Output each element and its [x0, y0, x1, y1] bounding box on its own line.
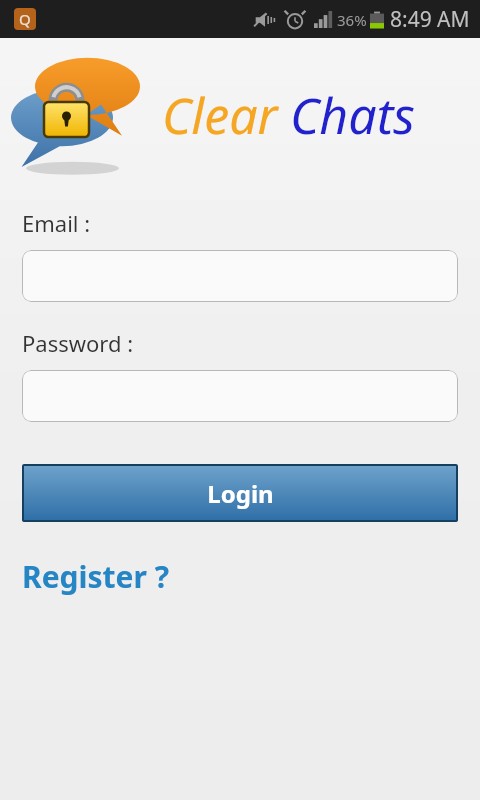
- staticText: 8:49 AM: [390, 5, 470, 34]
- button[interactable]: Login: [22, 464, 458, 522]
- staticText: Email :: [22, 208, 91, 238]
- button[interactable]: [22, 370, 458, 422]
- staticText: Register ?: [22, 556, 170, 597]
- staticText: Clear: [162, 81, 278, 149]
- button[interactable]: Register ?: [22, 554, 170, 599]
- staticText: Login: [207, 477, 274, 510]
- button[interactable]: [22, 250, 458, 302]
- staticText: Q: [19, 9, 31, 29]
- staticText: Password :: [22, 328, 134, 358]
- staticText: 36%: [337, 10, 367, 30]
- staticText: Chats: [290, 81, 415, 149]
